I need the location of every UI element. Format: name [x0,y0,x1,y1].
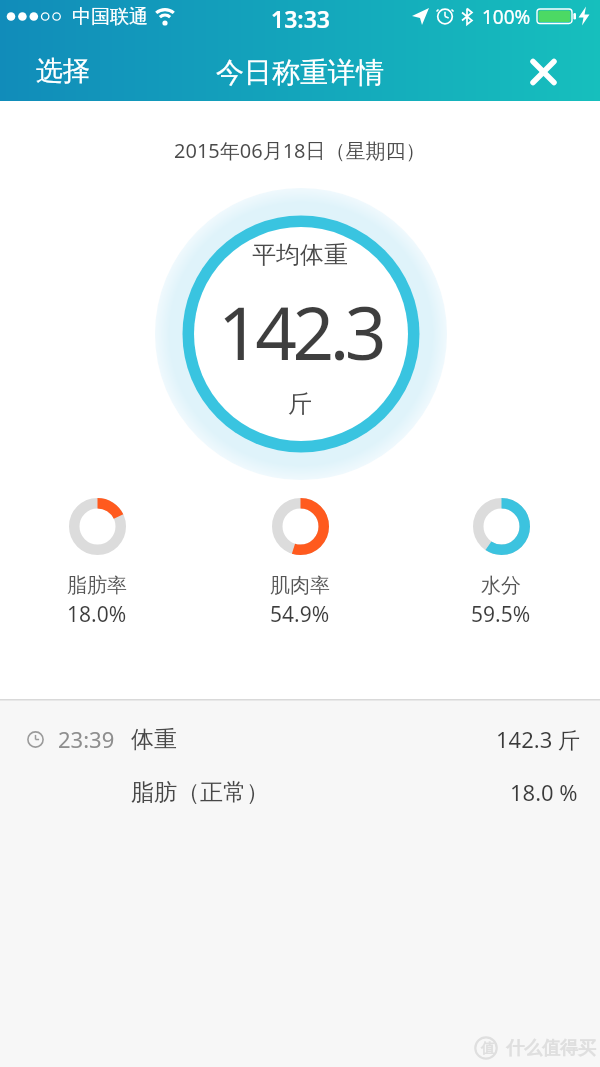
button[interactable] [519,48,567,96]
staticText: 值 [481,1040,495,1058]
staticText: 59.5% [471,600,531,629]
staticText: 什么值得买 [506,1037,596,1060]
staticText: 54.9% [270,600,330,629]
staticText: 13:33 [271,3,330,30]
staticText: 100% [482,4,531,29]
staticText: 今日称重详情 [216,55,384,90]
staticText: 体重 [131,725,177,754]
staticText: 中国联通 [72,5,148,29]
button[interactable]: 23:39 [0,712,600,766]
staticText: 脂肪（正常） [131,778,269,807]
staticText: 脂肪率 [67,573,127,598]
staticText: 平均体重 [252,240,348,270]
button[interactable]: 选择 [18,50,108,92]
staticText: 18.0% [67,600,127,629]
staticText: 18.0 % [510,777,578,807]
staticText: 水分 [481,573,521,598]
button[interactable]: 脂肪（正常） [0,766,600,818]
staticText: 肌肉率 [270,573,330,598]
staticText: 选择 [36,54,90,88]
staticText: 斤 [288,389,312,419]
staticText: 142.3 [218,282,383,381]
staticText: 142.3 斤 [496,724,580,754]
staticText: 23:39 [58,724,115,754]
staticText: 2015年06月18日（星期四） [174,137,426,164]
